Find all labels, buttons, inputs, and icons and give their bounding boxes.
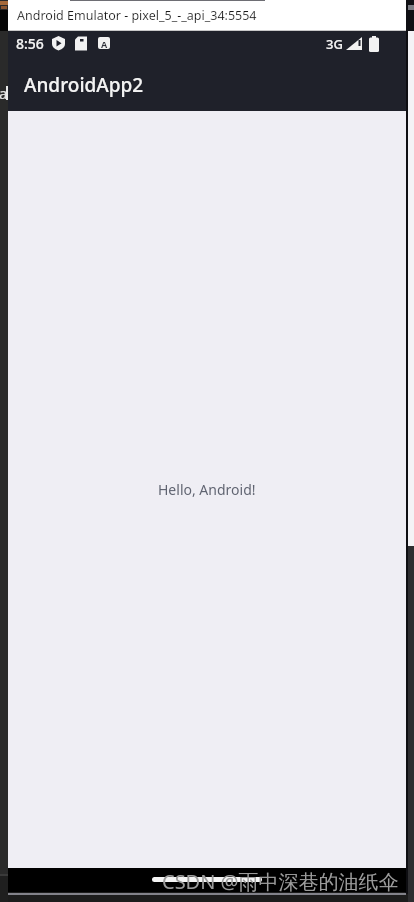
staticText: a [0, 83, 8, 103]
staticText: A [101, 38, 108, 50]
button[interactable] [152, 877, 262, 882]
staticText: AndroidApp2 [24, 72, 144, 98]
staticText: CSDN @雨中深巷的油纸伞 [162, 868, 399, 895]
staticText: Hello, Android! [158, 480, 256, 499]
staticText: Android Emulator - pixel_5_-_api_34:5554 [17, 7, 257, 24]
staticText: 3G [326, 35, 343, 53]
staticText: 8:56 [16, 34, 44, 53]
